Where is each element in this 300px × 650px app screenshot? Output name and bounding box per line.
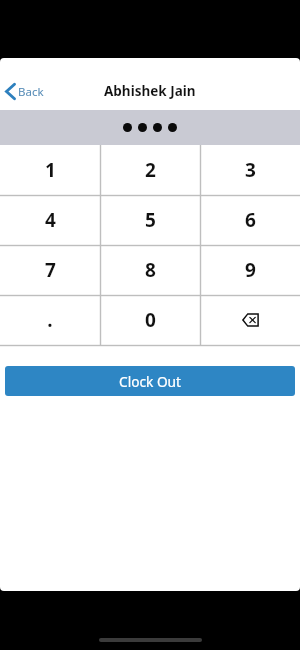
button[interactable]: 3 xyxy=(200,145,300,195)
button[interactable]: Clock Out xyxy=(5,366,295,396)
button[interactable]: 5 xyxy=(100,195,200,245)
staticText: 1 xyxy=(45,157,56,183)
other: Backspace xyxy=(242,313,259,327)
button[interactable]: Back xyxy=(0,71,52,111)
button[interactable]: 1 xyxy=(0,145,100,195)
button[interactable]: 9 xyxy=(200,245,300,295)
staticText: 3 xyxy=(245,157,256,183)
button[interactable]: 8 xyxy=(100,245,200,295)
button[interactable]: 6 xyxy=(200,195,300,245)
staticText: 8 xyxy=(145,257,156,283)
button[interactable]: . xyxy=(0,295,100,345)
staticText: 0 xyxy=(145,307,156,333)
button[interactable]: 7 xyxy=(0,245,100,295)
staticText: 4 xyxy=(45,207,56,233)
button[interactable]: Backspace xyxy=(200,295,300,345)
staticText: 9 xyxy=(245,257,256,283)
staticText: Back xyxy=(18,84,44,100)
button[interactable]: 4 xyxy=(0,195,100,245)
staticText: . xyxy=(47,307,53,333)
button[interactable]: 0 xyxy=(100,295,200,345)
staticText: Abhishek Jain xyxy=(104,82,196,100)
staticText: 5 xyxy=(145,207,156,233)
button[interactable]: 2 xyxy=(100,145,200,195)
staticText: Clock Out xyxy=(119,372,181,391)
staticText: 6 xyxy=(245,207,256,233)
staticText: 7 xyxy=(45,257,56,283)
staticText: 2 xyxy=(145,157,156,183)
